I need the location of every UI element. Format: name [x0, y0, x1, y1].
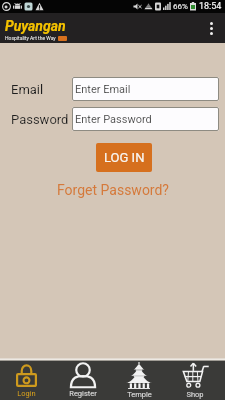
button[interactable]: Enter Password	[72, 107, 219, 131]
button[interactable]: Login	[0, 361, 55, 400]
staticText: Login	[17, 389, 36, 398]
button[interactable]: Shop	[167, 361, 223, 400]
staticText: Password	[11, 112, 72, 127]
staticText: 66%	[173, 2, 188, 11]
button[interactable]: More options	[197, 14, 225, 42]
button[interactable]: Enter Email	[72, 77, 219, 101]
button[interactable]: Temple	[111, 361, 167, 400]
button[interactable]: Forget Password?	[51, 180, 175, 200]
staticText: Enter Password	[75, 113, 152, 126]
button[interactable]: Register	[55, 361, 111, 400]
staticText: Puyangan	[5, 18, 66, 34]
staticText: Shop	[186, 390, 204, 399]
staticText: Temple	[127, 390, 152, 399]
staticText: Email	[11, 82, 72, 97]
staticText: LOG IN	[104, 150, 145, 165]
staticText: Enter Email	[75, 83, 131, 96]
staticText: Forget Password?	[57, 182, 169, 198]
staticText: Register	[69, 389, 97, 398]
button[interactable]: LOG IN	[96, 143, 152, 172]
staticText: Hospitality Art the Way	[5, 35, 56, 41]
staticText: 18:54	[199, 1, 222, 12]
